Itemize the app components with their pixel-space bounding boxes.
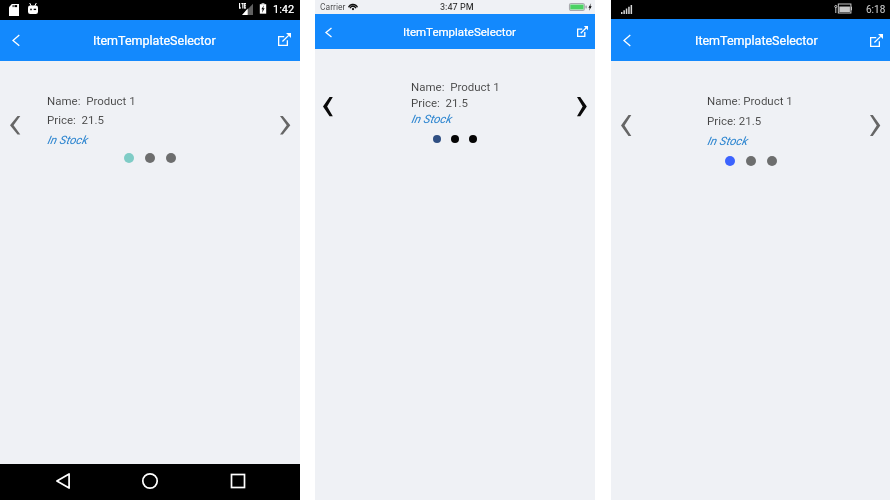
button[interactable]: Back: [316, 18, 342, 47]
button[interactable]: Open in new window: [571, 20, 594, 43]
staticText: ItemTemplateSelector: [403, 25, 683, 38]
staticText: In Stock: [47, 133, 88, 146]
button[interactable]: Page 1: [124, 153, 134, 163]
staticText: Price: 21.5: [47, 113, 104, 126]
staticText: ItemTemplateSelector: [93, 33, 393, 48]
button[interactable]: Next: [862, 107, 888, 144]
button[interactable]: Page 1: [725, 156, 735, 166]
button[interactable]: Page 2: [451, 135, 459, 143]
button[interactable]: Next: [569, 89, 595, 124]
staticText: Price: 21.5: [707, 114, 762, 127]
staticText: 3:47 PM: [440, 2, 474, 13]
button[interactable]: Previous: [2, 108, 28, 143]
button[interactable]: Recent apps: [221, 464, 255, 498]
staticText: 6:18: [866, 4, 886, 16]
button[interactable]: Page 2: [145, 153, 155, 163]
button[interactable]: Page 2: [746, 156, 756, 166]
staticText: Carrier: [320, 2, 346, 12]
button[interactable]: Previous: [315, 89, 341, 124]
staticText: Name: Product 1: [47, 94, 136, 107]
staticText: 1:42: [273, 3, 295, 16]
button[interactable]: Next: [272, 108, 298, 143]
button[interactable]: Previous: [613, 107, 639, 144]
staticText: Name: Product 1: [411, 80, 500, 93]
button[interactable]: Open in new window: [864, 28, 889, 53]
button[interactable]: Page 3: [469, 135, 477, 143]
staticText: In Stock: [411, 112, 452, 125]
staticText: Price: 21.5: [411, 96, 468, 109]
button[interactable]: Home: [133, 464, 167, 498]
button[interactable]: Page 1: [433, 135, 441, 143]
button[interactable]: Back: [614, 25, 640, 56]
button[interactable]: Page 3: [166, 153, 176, 163]
staticText: In Stock: [707, 134, 748, 147]
button[interactable]: Open in new window: [272, 27, 297, 52]
button[interactable]: Back: [3, 25, 29, 56]
staticText: ItemTemplateSelector: [695, 33, 890, 48]
staticText: Name: Product 1: [707, 94, 793, 107]
button[interactable]: Page 3: [767, 156, 777, 166]
button[interactable]: Back: [46, 464, 80, 498]
